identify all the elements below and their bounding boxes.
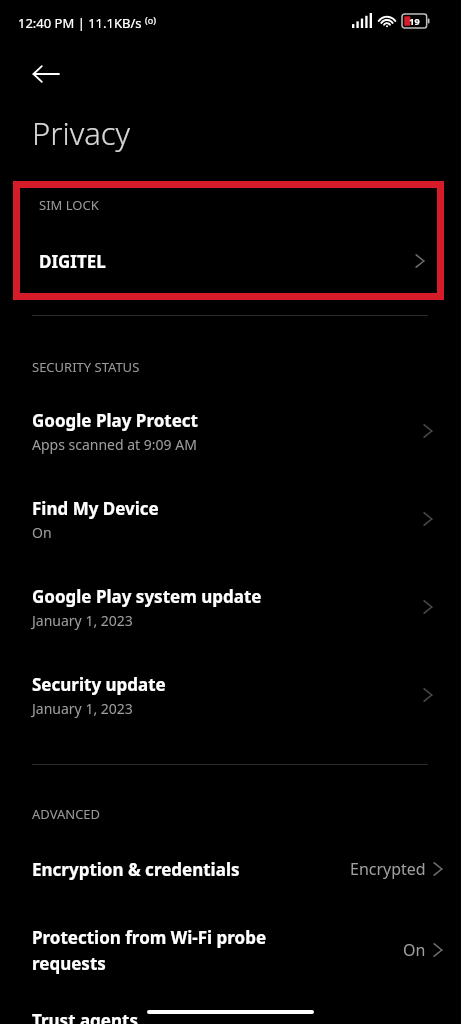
button[interactable]: Encryption & credentials <box>0 845 461 893</box>
staticText: Encrypted <box>350 858 426 880</box>
staticText: Apps scanned at 9:09 AM <box>32 435 197 454</box>
button[interactable]: Google Play Protect <box>0 400 461 462</box>
staticText: Privacy <box>32 112 131 154</box>
staticText: Security update <box>32 673 166 696</box>
staticText: SIM LOCK <box>39 196 99 214</box>
button[interactable]: Protection from Wi-Fi probe requests <box>0 915 461 985</box>
staticText: On <box>32 523 52 542</box>
staticText: Google Play system update <box>32 585 262 608</box>
staticText: 12:40 PM | 11.1KB/s <box>18 14 142 32</box>
staticText: (o) <box>145 14 156 26</box>
staticText: Trust agents <box>32 1009 138 1024</box>
button[interactable]: Security update <box>0 664 461 726</box>
staticText: Protection from Wi-Fi probe requests <box>32 926 267 975</box>
button[interactable]: Back <box>20 55 72 93</box>
staticText: Google Play Protect <box>32 409 198 432</box>
button[interactable]: Google Play system update <box>0 576 461 638</box>
button[interactable]: DIGITEL <box>20 236 437 286</box>
staticText: DIGITEL <box>39 250 106 273</box>
staticText: 19 <box>409 15 420 27</box>
staticText: On <box>403 939 426 961</box>
button[interactable]: Find My Device <box>0 488 461 550</box>
staticText: January 1, 2023 <box>32 699 133 718</box>
staticText: ADVANCED <box>32 805 101 823</box>
staticText: Encryption & credentials <box>32 858 240 881</box>
staticText: January 1, 2023 <box>32 611 133 630</box>
staticText: Find My Device <box>32 497 159 520</box>
staticText: SECURITY STATUS <box>32 358 140 376</box>
